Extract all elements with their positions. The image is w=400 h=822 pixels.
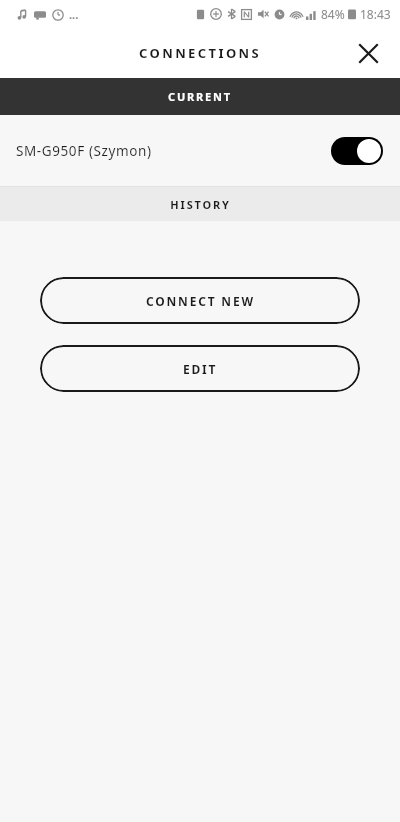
staticText: EDIT [183,361,218,377]
staticText: CONNECTIONS [139,44,262,62]
staticText: CURRENT [168,89,232,104]
staticText: 18:43 [360,6,391,22]
button[interactable]: CONNECT NEW [40,277,360,324]
button[interactable]: SM-G950F (Szymon) [0,115,400,186]
staticText: HISTORY [170,197,231,212]
button[interactable]: Close [348,33,388,73]
staticText: CONNECT NEW [146,293,255,309]
staticText: SM-G950F (Szymon) [16,142,331,160]
staticText: 84% [321,6,345,22]
button[interactable]: Connection toggle, on [331,137,383,165]
button[interactable]: EDIT [40,345,360,392]
staticText: ... [69,7,79,22]
